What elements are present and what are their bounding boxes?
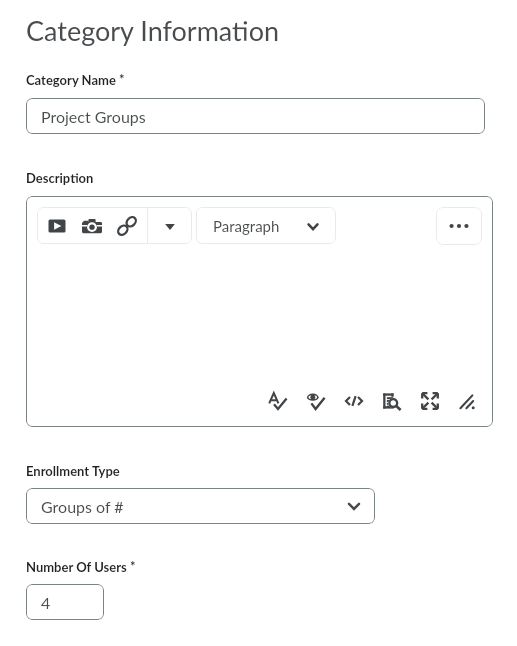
button[interactable]: Accessibility check <box>297 382 335 419</box>
staticText: Project Groups <box>41 107 146 126</box>
button[interactable]: Check spelling <box>259 382 297 419</box>
button[interactable]: Groups of # <box>26 488 375 524</box>
staticText: Paragraph <box>213 217 280 235</box>
button[interactable]: More insert options <box>148 207 192 244</box>
button[interactable]: Project Groups <box>26 98 485 134</box>
staticText: Enrollment Type <box>26 463 120 479</box>
button[interactable]: Insert image <box>74 207 109 244</box>
staticText: Category Information <box>26 14 280 46</box>
button[interactable]: HTML source <box>335 382 373 419</box>
staticText: 4 <box>41 593 51 612</box>
button[interactable]: Insert video <box>39 207 74 244</box>
staticText: Number Of Users <box>26 559 127 575</box>
button[interactable]: Insert link <box>109 207 144 244</box>
button[interactable]: More options <box>436 207 482 245</box>
button[interactable]: Fullscreen <box>411 382 449 419</box>
button[interactable]: Resize <box>449 382 487 419</box>
staticText: * <box>130 558 136 574</box>
staticText: Groups of # <box>41 497 124 516</box>
button[interactable]: Paragraph <box>196 207 336 244</box>
button[interactable]: 4 <box>26 584 104 620</box>
button[interactable]: Word count <box>373 382 411 419</box>
staticText: Category Name <box>26 72 116 88</box>
staticText: * <box>119 71 125 87</box>
staticText: Description <box>26 170 94 186</box>
